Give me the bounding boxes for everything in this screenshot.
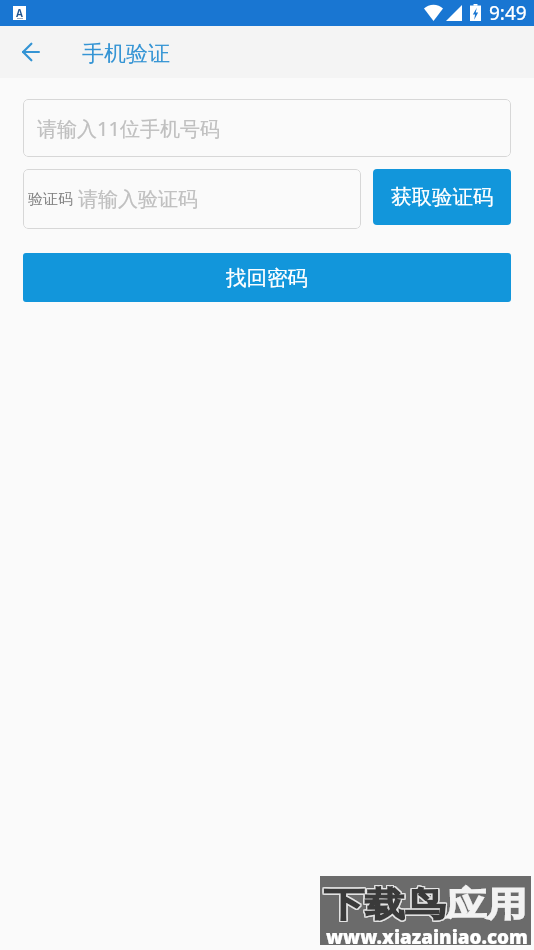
staticText: 下载鸟: [324, 883, 446, 926]
button[interactable]: Back: [4, 26, 52, 78]
staticText: 9:49: [489, 0, 527, 26]
staticText: 找回密码: [226, 265, 308, 291]
staticText: 请输入验证码: [78, 187, 198, 212]
button[interactable]: 验证码: [23, 169, 361, 229]
staticText: A: [16, 6, 23, 20]
staticText: 下载鸟: [323, 883, 445, 926]
staticText: 下载鸟: [323, 884, 445, 927]
staticText: 获取验证码: [391, 184, 494, 210]
staticText: 下载鸟: [324, 882, 446, 925]
staticText: 下载鸟: [325, 882, 447, 925]
button[interactable]: 获取验证码: [373, 169, 511, 225]
staticText: www.xiazainiao.com: [326, 924, 528, 950]
staticText: 验证码: [28, 190, 73, 209]
staticText: 手机验证: [82, 40, 170, 68]
staticText: 下载鸟: [324, 884, 446, 927]
staticText: 下载鸟: [325, 884, 447, 927]
button[interactable]: 找回密码: [23, 253, 511, 302]
staticText: 下载鸟: [323, 882, 445, 925]
staticText: 下载鸟: [325, 883, 447, 926]
staticText: 应用: [446, 883, 527, 926]
button[interactable]: 请输入11位手机号码: [23, 99, 511, 157]
staticText: 请输入11位手机号码: [37, 115, 220, 142]
